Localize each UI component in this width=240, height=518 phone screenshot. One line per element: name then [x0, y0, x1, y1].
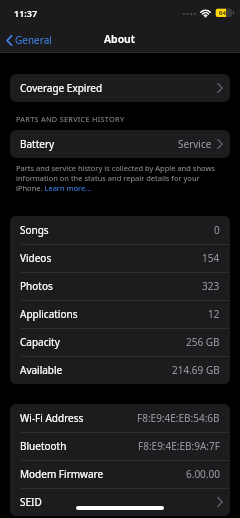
- staticText: About: [104, 32, 136, 46]
- staticText: Modem Firmware: [20, 467, 104, 481]
- staticText: F8:E9:4E:EB:9A:7F: [138, 439, 220, 453]
- button[interactable]: Applications: [10, 300, 230, 328]
- staticText: 323: [202, 279, 220, 293]
- staticText: 11:37: [14, 7, 38, 19]
- staticText: information on the status and repair det…: [16, 173, 200, 183]
- button[interactable]: Battery: [10, 130, 230, 158]
- staticText: PARTS AND SERVICE HISTORY: [16, 114, 125, 124]
- button[interactable]: Videos: [10, 244, 230, 272]
- staticText: 0: [214, 223, 220, 237]
- staticText: iPhone. Learn more...: [16, 183, 92, 193]
- staticText: Bluetooth: [20, 439, 67, 453]
- button[interactable]: Songs: [10, 216, 230, 244]
- staticText: Wi-Fi Address: [20, 411, 84, 425]
- staticText: Videos: [20, 251, 52, 265]
- button[interactable]: Photos: [10, 272, 230, 300]
- staticText: 64: [219, 9, 226, 17]
- staticText: Coverage Expired: [20, 81, 103, 95]
- button[interactable]: Modem Firmware: [10, 460, 230, 488]
- staticText: 6.00.00: [186, 467, 220, 481]
- button[interactable]: General: [6, 33, 52, 47]
- button[interactable]: Wi-Fi Address: [10, 404, 230, 432]
- button[interactable]: Bluetooth: [10, 432, 230, 460]
- staticText: Songs: [20, 223, 49, 237]
- staticText: Applications: [20, 307, 78, 321]
- staticText: Available: [20, 363, 63, 377]
- staticText: 154: [202, 251, 220, 265]
- staticText: 214.69 GB: [172, 363, 220, 377]
- staticText: Parts and service history is collected b…: [16, 163, 215, 173]
- staticText: Battery: [20, 137, 55, 151]
- staticText: Service: [178, 137, 212, 151]
- button[interactable]: SEID: [10, 488, 230, 516]
- staticText: Capacity: [20, 335, 60, 349]
- staticText: 12: [208, 307, 220, 321]
- button[interactable]: Capacity: [10, 328, 230, 356]
- staticText: SEID: [20, 495, 42, 509]
- staticText: F8:E9:4E:EB:54:6B: [137, 411, 220, 425]
- staticText: 256 GB: [186, 335, 220, 349]
- button[interactable]: Coverage Expired: [10, 74, 230, 102]
- staticText: General: [15, 33, 52, 47]
- button[interactable]: Available: [10, 356, 230, 384]
- staticText: Photos: [20, 279, 53, 293]
